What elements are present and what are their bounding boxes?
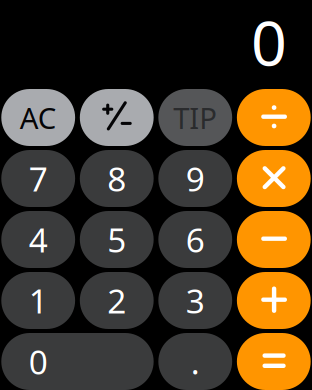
staticText: 3: [186, 278, 205, 323]
staticText: 0: [29, 339, 48, 384]
staticText: .: [191, 339, 200, 384]
staticText: 0: [251, 0, 287, 83]
button[interactable]: 7: [1, 150, 75, 207]
button[interactable]: Equals: [237, 333, 311, 390]
button[interactable]: 2: [80, 272, 154, 329]
staticText: 6: [186, 217, 205, 262]
button[interactable]: Subtract: [237, 211, 311, 268]
button[interactable]: Add: [237, 272, 311, 329]
button[interactable]: 8: [80, 150, 154, 207]
button[interactable]: Multiply: [237, 150, 311, 207]
staticText: 8: [107, 156, 126, 201]
staticText: 4: [29, 217, 48, 262]
button[interactable]: TIP: [158, 89, 232, 146]
button[interactable]: Divide: [237, 89, 311, 146]
button[interactable]: 9: [158, 150, 232, 207]
button[interactable]: .: [158, 333, 232, 390]
staticText: 5: [107, 217, 126, 262]
staticText: 1: [29, 278, 48, 323]
button[interactable]: AC: [1, 89, 75, 146]
button[interactable]: 0: [1, 333, 154, 390]
staticText: AC: [20, 98, 57, 137]
staticText: 9: [186, 156, 205, 201]
staticText: TIP: [173, 98, 217, 137]
staticText: 7: [29, 156, 48, 201]
button[interactable]: 4: [1, 211, 75, 268]
button[interactable]: 1: [1, 272, 75, 329]
staticText: 2: [107, 278, 126, 323]
button[interactable]: Toggle sign: [80, 89, 154, 146]
button[interactable]: 6: [158, 211, 232, 268]
button[interactable]: 5: [80, 211, 154, 268]
button[interactable]: 3: [158, 272, 232, 329]
